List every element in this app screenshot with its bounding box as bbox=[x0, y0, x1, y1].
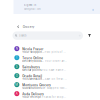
staticText: Substitutions bbox=[22, 86, 41, 90]
button[interactable]: T bbox=[14, 55, 66, 64]
staticText: Grocery bbox=[23, 25, 35, 29]
staticText: Delivery booked bbox=[22, 59, 44, 63]
staticText: T bbox=[16, 56, 18, 59]
staticText: S bbox=[16, 65, 18, 68]
staticText: We swapped two items bbox=[42, 86, 66, 90]
staticText: M bbox=[15, 83, 18, 86]
staticText: Thanks for shopping bbox=[42, 95, 66, 99]
button[interactable]: N bbox=[14, 46, 66, 55]
button[interactable]: Filter bbox=[86, 32, 93, 39]
staticText: Save on fresh food bbox=[44, 77, 66, 81]
staticText: Sainsburys bbox=[22, 65, 40, 69]
staticText: Asda Delivery bbox=[22, 92, 44, 96]
staticText: Your order arrives bbox=[44, 59, 66, 63]
button[interactable]: O bbox=[14, 73, 66, 82]
button[interactable]: Clear search bbox=[78, 33, 82, 38]
staticText: Ocado Retail bbox=[22, 74, 42, 78]
button[interactable]: Back bbox=[16, 24, 21, 29]
staticText: Your receipt bbox=[22, 95, 41, 99]
button[interactable]: S bbox=[14, 64, 66, 73]
staticText: name@mail.com bbox=[24, 8, 41, 10]
staticText: O bbox=[16, 74, 18, 77]
staticText: Search bbox=[19, 34, 26, 37]
staticText: This weeks offers bbox=[22, 77, 44, 81]
staticText: A bbox=[16, 92, 18, 95]
staticText: Morrisons Grocery bbox=[22, 83, 51, 87]
staticText: Nicola Fraser bbox=[22, 47, 43, 51]
staticText: Your shopping list bbox=[22, 50, 44, 54]
staticText: Two pints of milk bbox=[44, 50, 66, 54]
button[interactable]: M bbox=[14, 82, 66, 91]
staticText: Nectar points bbox=[22, 68, 41, 72]
staticText: Tesco Online bbox=[22, 56, 43, 60]
staticText: Signed in bbox=[24, 4, 36, 7]
button[interactable]: A bbox=[14, 91, 66, 100]
staticText: You have earned 240 bbox=[42, 68, 66, 72]
staticText: N bbox=[16, 47, 18, 50]
